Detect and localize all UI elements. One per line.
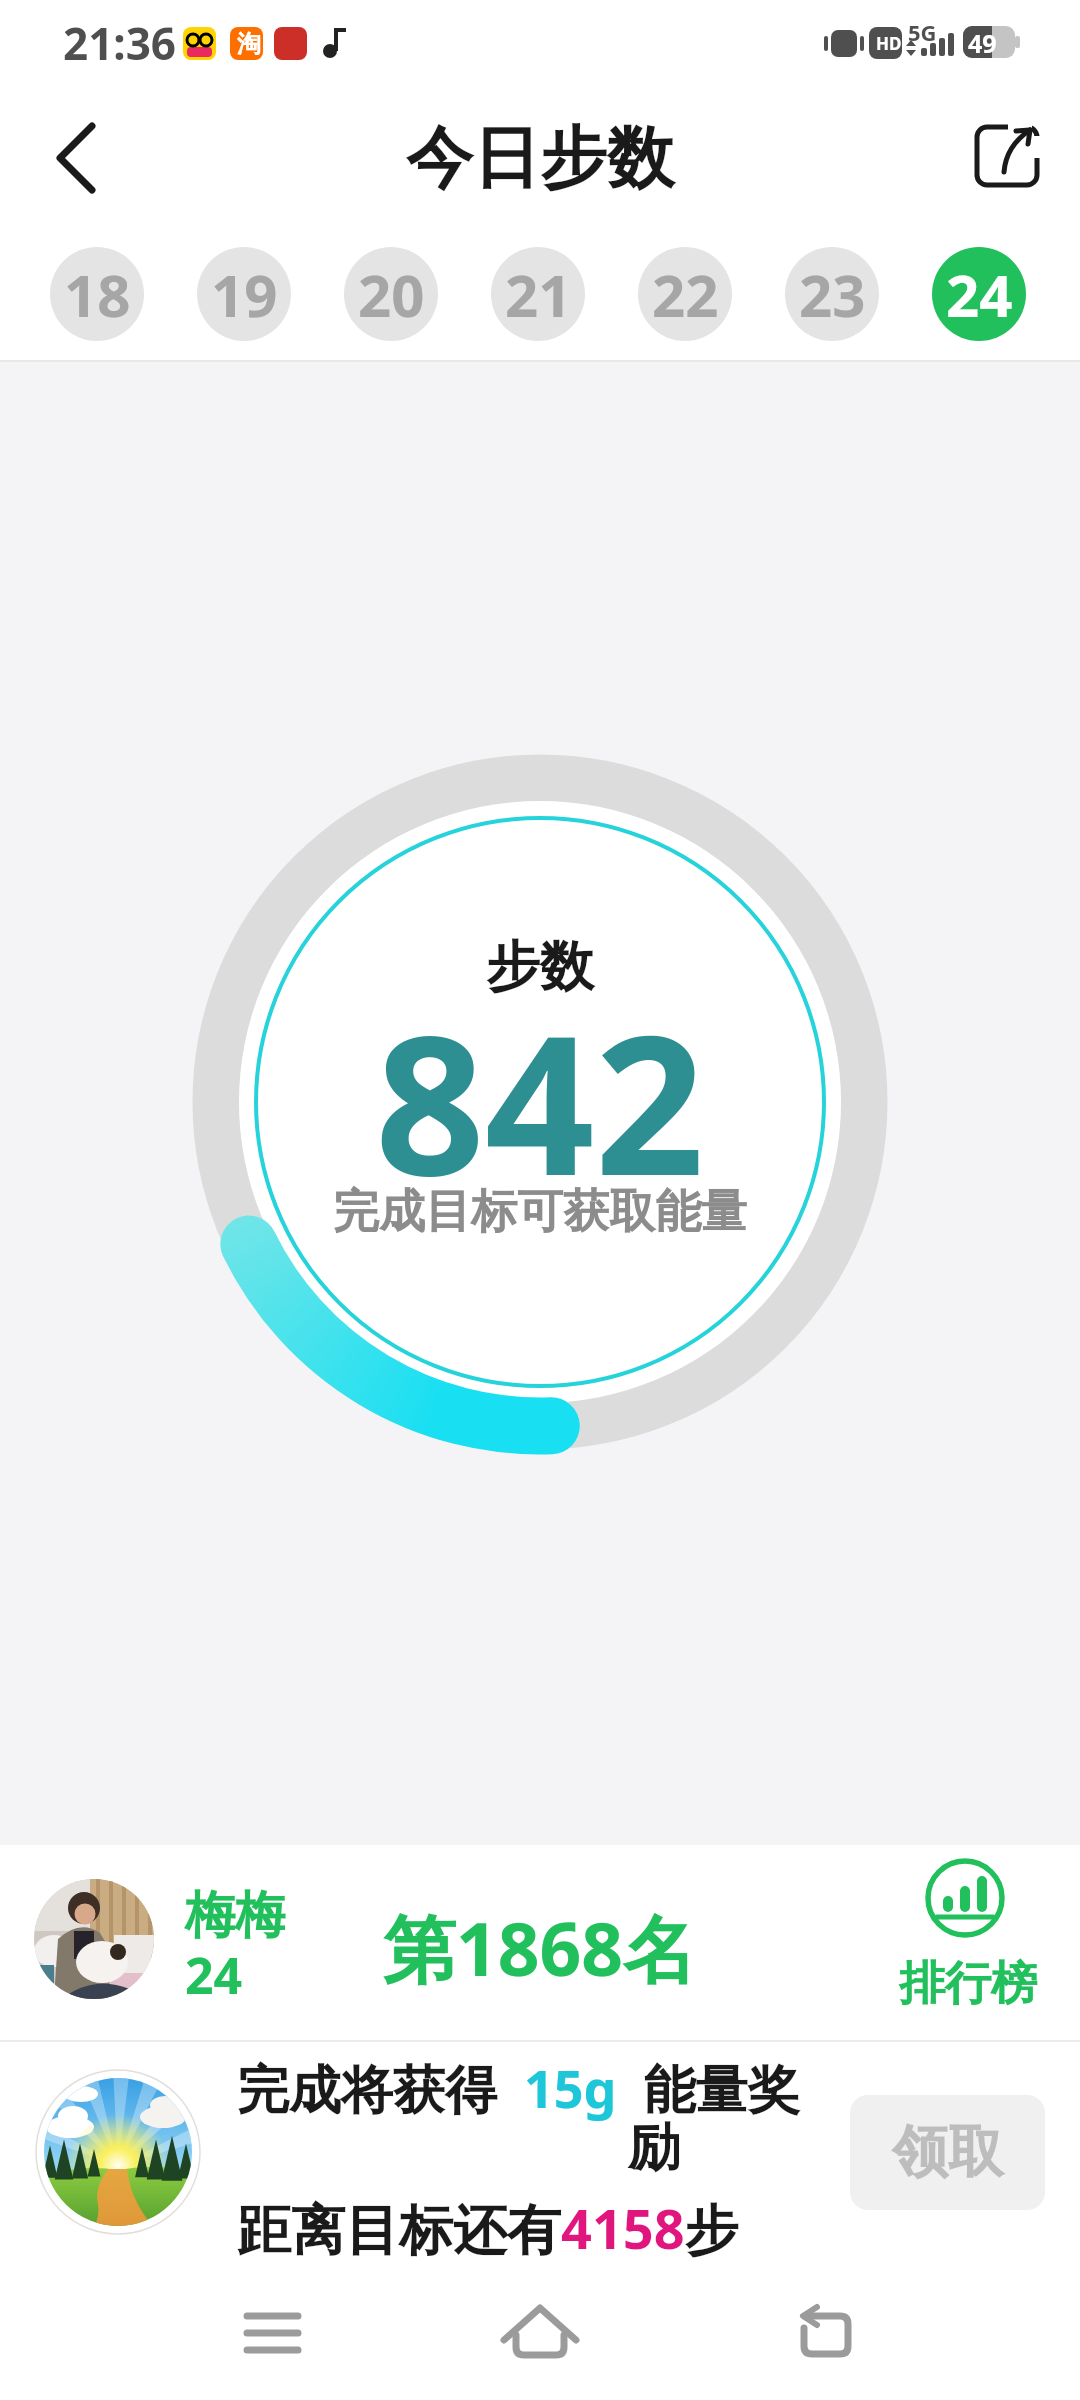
staticText: 梅梅	[185, 1884, 285, 1947]
staticText: 21	[505, 255, 572, 334]
staticText: 完成目标可获取能量	[333, 1183, 747, 1241]
staticText: HD	[876, 32, 902, 55]
staticText: 排行榜	[899, 1955, 1037, 2013]
button[interactable]: 23	[785, 247, 879, 341]
staticText: 距离目标还有4158步	[237, 2191, 739, 2265]
button[interactable]: 21	[491, 247, 585, 341]
staticText: 励	[628, 2115, 680, 2181]
button[interactable]	[40, 116, 120, 200]
staticText: 18	[64, 255, 131, 334]
staticText: 24	[946, 255, 1013, 334]
button[interactable]	[970, 120, 1046, 196]
staticText: 23	[799, 255, 866, 334]
staticText: 842	[375, 970, 705, 1232]
staticText: 24	[185, 1941, 243, 2009]
button[interactable]: 19	[197, 247, 291, 341]
button[interactable]: 18	[50, 247, 144, 341]
staticText: 49	[968, 26, 997, 60]
button[interactable]	[0, 1845, 1080, 2040]
button[interactable]	[777, 2283, 877, 2383]
button[interactable]: 24	[932, 247, 1026, 341]
staticText: 淘	[237, 29, 261, 59]
staticText: 22	[652, 255, 719, 334]
staticText: 步数	[486, 933, 594, 1001]
button[interactable]	[222, 2283, 322, 2383]
staticText: 19	[211, 255, 278, 334]
button[interactable]: 领取	[850, 2095, 1045, 2210]
staticText: 5G	[908, 17, 937, 47]
button[interactable]: 20	[344, 247, 438, 341]
staticText: 完成将获得 15g 能量奖	[237, 2052, 800, 2123]
staticText: 今日步数	[406, 116, 674, 200]
button[interactable]	[34, 1879, 154, 1999]
button[interactable]: 排行榜	[880, 1850, 1055, 2025]
button[interactable]	[490, 2283, 590, 2383]
button[interactable]	[36, 2070, 200, 2234]
staticText: 21:36	[63, 13, 177, 73]
staticText: 领取	[892, 2117, 1004, 2188]
staticText: 第1868名	[383, 1898, 697, 1998]
staticText: 20	[358, 255, 425, 334]
button[interactable]: 22	[638, 247, 732, 341]
